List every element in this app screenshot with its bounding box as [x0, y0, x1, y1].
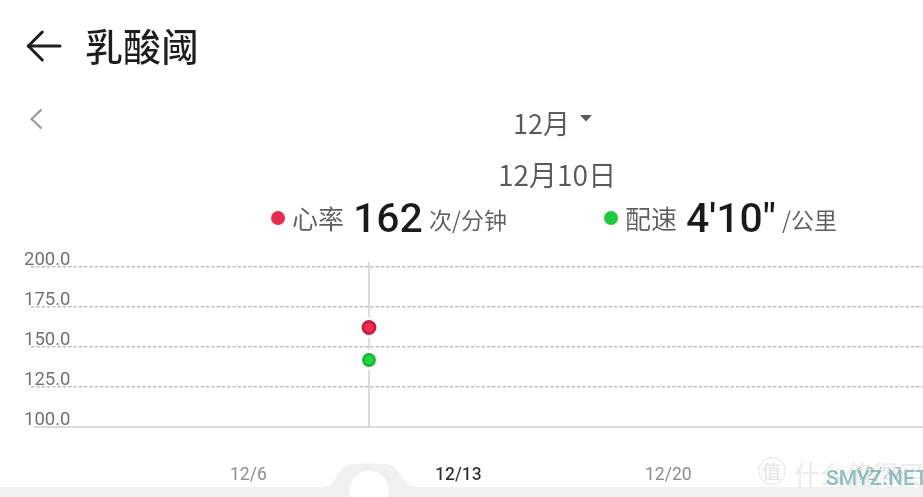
staticText: 心率 — [292, 199, 345, 237]
staticText: 12/6 — [230, 464, 267, 485]
staticText: SMYZ.NET — [826, 466, 923, 491]
staticText: 162 — [353, 194, 423, 242]
staticText: 次/分钟 — [429, 202, 508, 235]
staticText: /公里 — [782, 202, 838, 235]
staticText: 什么值得买 — [794, 455, 923, 493]
staticText: 100.0 — [24, 408, 71, 430]
staticText: 4'10" — [686, 194, 776, 242]
staticText: 12/20 — [645, 464, 692, 485]
staticText: 12月10日 — [498, 154, 617, 195]
staticText: 12月 — [513, 103, 570, 142]
staticText: 200.0 — [24, 248, 71, 270]
staticText: 125.0 — [24, 368, 71, 390]
button[interactable]: 12月 — [509, 103, 596, 142]
button[interactable]: Start workout — [349, 470, 389, 497]
staticText: 值 — [762, 457, 782, 485]
staticText: 乳酸阈 — [85, 17, 200, 72]
staticText: 175.0 — [24, 288, 71, 310]
staticText: 配速 — [625, 199, 678, 237]
staticText: 12/27 — [855, 464, 902, 485]
button[interactable]: 心率 — [271, 194, 508, 242]
button[interactable]: Back — [16, 18, 72, 74]
button[interactable]: 配速 — [604, 194, 838, 242]
staticText: 12/13 — [435, 464, 482, 485]
staticText: 150.0 — [24, 328, 71, 350]
button[interactable]: Previous month — [14, 97, 58, 141]
